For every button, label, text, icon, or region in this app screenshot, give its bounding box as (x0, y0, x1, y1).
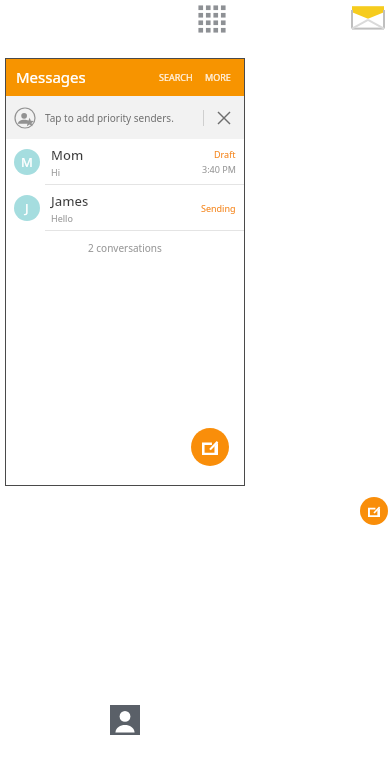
button[interactable]: Close (213, 107, 235, 129)
staticText: Sending (201, 202, 236, 214)
staticText: 2 conversations (88, 241, 162, 255)
button[interactable]: Tap to add priority senders. (5, 96, 245, 139)
staticText: MORE (205, 71, 231, 83)
button[interactable]: SEARCH (153, 65, 199, 89)
staticText: Draft (214, 148, 236, 160)
button[interactable]: Compose message (360, 497, 388, 525)
staticText: Tap to add priority senders. (45, 111, 174, 125)
staticText: Hello (51, 212, 73, 224)
button[interactable]: MORE (199, 65, 237, 89)
button[interactable]: J (5, 185, 245, 230)
staticText: J (25, 199, 29, 217)
staticText: Mom (51, 146, 84, 164)
button[interactable]: M (5, 139, 245, 184)
staticText: James (51, 192, 89, 210)
button[interactable]: Compose message (191, 428, 229, 466)
staticText: Hi (51, 166, 60, 178)
staticText: 3:40 PM (202, 163, 236, 175)
staticText: SEARCH (159, 71, 193, 83)
staticText: M (21, 153, 33, 171)
staticText: Messages (16, 67, 86, 87)
